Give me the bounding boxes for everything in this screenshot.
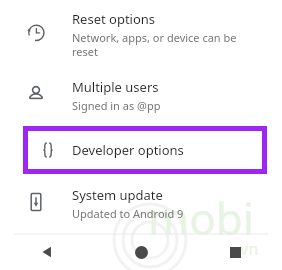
- staticText: .vn: [236, 238, 259, 260]
- staticText: Signed in as @pp: [72, 98, 161, 113]
- button[interactable]: Developer options: [23, 126, 267, 174]
- staticText: Multiple users: [72, 78, 159, 96]
- staticText: Reset options: [72, 10, 156, 28]
- staticText: Developer options: [72, 141, 184, 159]
- button[interactable]: System update: [0, 178, 282, 230]
- button[interactable]: Recent apps: [188, 234, 282, 270]
- button[interactable]: Home: [94, 234, 188, 270]
- staticText: mobi: [148, 188, 255, 248]
- button[interactable]: Multiple users: [0, 70, 282, 122]
- staticText: Network, apps, or device can be reset: [72, 30, 237, 59]
- button[interactable]: Reset options: [0, 0, 282, 70]
- staticText: System update: [72, 186, 163, 204]
- button[interactable]: Back: [0, 234, 94, 270]
- staticText: Updated to Android 9: [72, 206, 184, 221]
